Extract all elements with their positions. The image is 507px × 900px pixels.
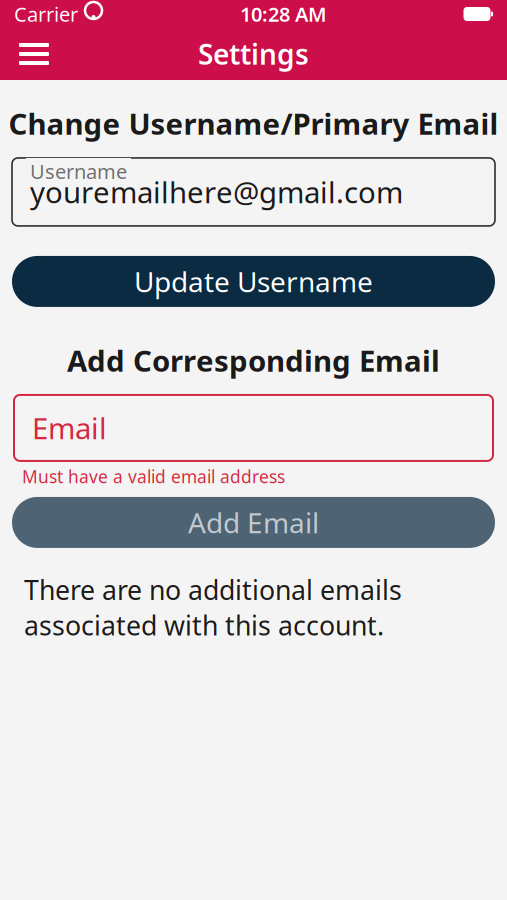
staticText: Settings [198,35,309,73]
staticText: Update Username [134,263,373,300]
staticText: Change Username/Primary Email [8,104,498,143]
staticText: There are no additional emails associate… [24,572,402,643]
staticText: Must have a valid email address [22,465,285,488]
staticText: Add Email [188,504,319,541]
staticText: 10:28 AM [240,1,327,27]
button[interactable]: Add Email [12,497,495,548]
button[interactable]: Update Username [12,256,495,307]
staticText: Add Corresponding Email [67,341,440,380]
staticText: Username [30,158,127,185]
staticText: Email [32,408,107,447]
staticText: Carrier [14,1,78,27]
staticText: youremailhere@gmail.com [30,172,403,211]
button[interactable]: Menu [8,32,60,76]
